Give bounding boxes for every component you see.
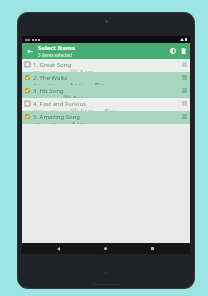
- staticText: 4. Fast and Furious: [33, 100, 87, 108]
- staticText: 128 bpm 4/4: [33, 122, 57, 124]
- staticText: 112 bpm: [33, 96, 50, 98]
- button[interactable]: Delete: [178, 46, 188, 56]
- staticText: 3. Hit Song: [33, 87, 64, 95]
- staticText: 130 bpm 4/4: [33, 70, 57, 72]
- button[interactable]: Back: [22, 43, 190, 59]
- staticText: 1. Great Song: [33, 61, 72, 69]
- staticText: 0:03: [78, 96, 86, 98]
- staticText: 5. Amazing Song: [33, 113, 81, 121]
- staticText: 0:03: [85, 70, 93, 72]
- button[interactable]: 5. Amazing Song: [22, 111, 190, 124]
- button[interactable]: 2. The Waltz: [22, 72, 190, 85]
- staticText: 0:03: [85, 109, 93, 111]
- button[interactable]: Back: [43, 243, 74, 254]
- staticText: 3 items selected: [38, 52, 73, 58]
- button[interactable]: Invert selection: [168, 46, 178, 56]
- button[interactable]: 3. Hit Song: [22, 85, 190, 98]
- staticText: 0:03: [77, 122, 85, 124]
- button[interactable]: Back: [25, 47, 34, 56]
- staticText: 0:03: [75, 83, 83, 85]
- staticText: Note on: [111, 109, 127, 111]
- button[interactable]: 1. Great Song: [22, 59, 190, 72]
- staticText: 75 bpm 3/4: [33, 83, 55, 85]
- staticText: Select Items: [38, 44, 75, 52]
- staticText: 200 bpm 7/8: [33, 109, 57, 111]
- button[interactable]: 4. Fast and Furious: [22, 98, 190, 111]
- button[interactable]: Recents: [137, 243, 168, 254]
- staticText: 2. The Waltz: [33, 74, 67, 82]
- staticText: Note on: [101, 83, 117, 85]
- button[interactable]: Home: [90, 243, 121, 254]
